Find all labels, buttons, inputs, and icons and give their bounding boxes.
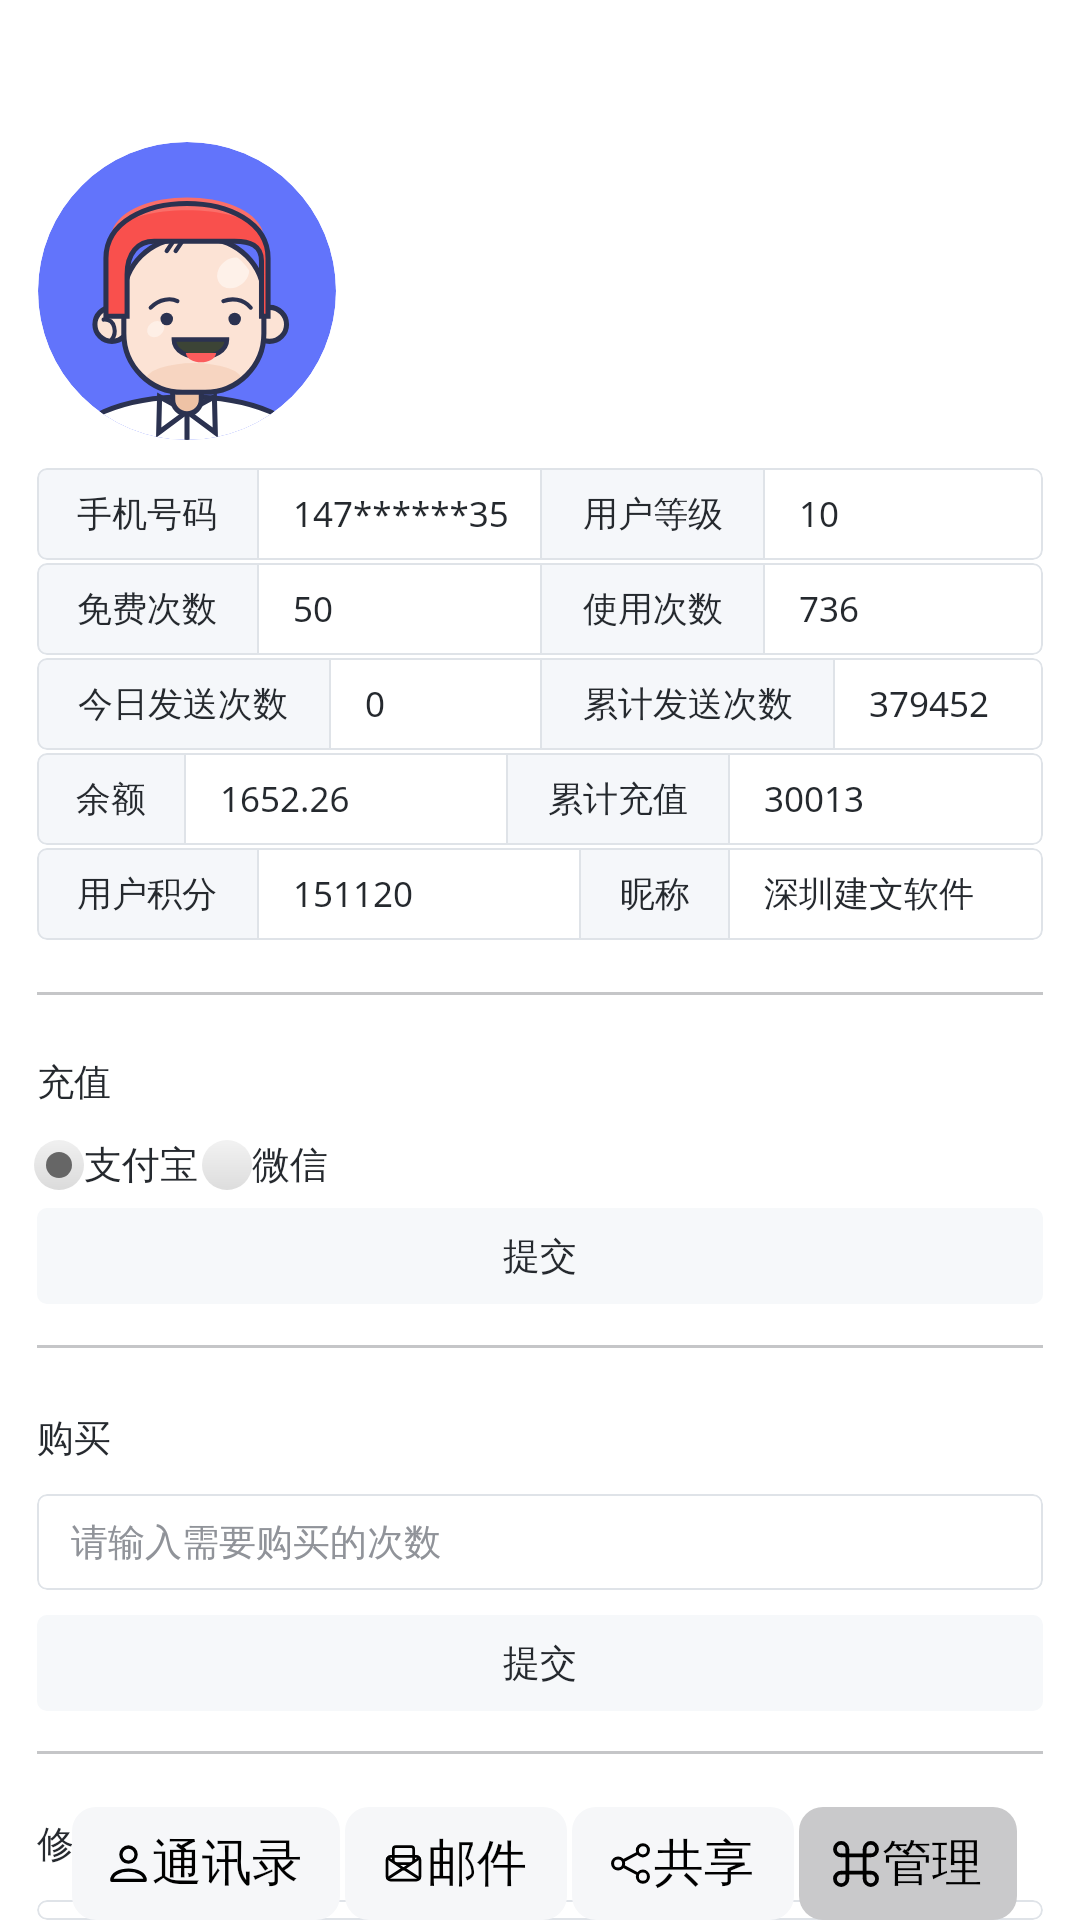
- staticText: 0: [365, 680, 386, 728]
- staticText: 管理: [882, 1832, 982, 1895]
- staticText: 10: [799, 490, 840, 538]
- button[interactable]: 提交: [37, 1208, 1043, 1304]
- staticText: 累计发送次数: [583, 682, 793, 726]
- staticText: 余额: [76, 777, 146, 821]
- staticText: 151120: [293, 870, 414, 918]
- staticText: 邮件: [427, 1832, 527, 1895]
- button[interactable]: 提交: [37, 1615, 1043, 1711]
- staticText: 使用次数: [583, 587, 723, 631]
- staticText: 修改昵称: [37, 1821, 185, 1868]
- staticText: 提交: [503, 1640, 577, 1687]
- staticText: 共享: [654, 1832, 754, 1895]
- button[interactable]: 微信: [202, 1140, 328, 1190]
- staticText: 手机号码: [77, 492, 217, 536]
- staticText: 请输入需要购买的次数: [71, 1519, 441, 1566]
- staticText: 累计充值: [548, 777, 688, 821]
- staticText: 深圳建文软件: [764, 872, 974, 916]
- staticText: 379452: [869, 680, 990, 728]
- button[interactable]: 共享: [572, 1807, 794, 1920]
- button[interactable]: 请输入需要购买的次数: [37, 1494, 1043, 1590]
- staticText: 充值: [37, 1059, 111, 1106]
- staticText: 用户积分: [77, 872, 217, 916]
- staticText: 通讯录: [152, 1832, 302, 1895]
- staticText: 提交: [503, 1233, 577, 1280]
- button[interactable]: 通讯录: [72, 1807, 340, 1920]
- button[interactable]: 邮件: [345, 1807, 567, 1920]
- staticText: 736: [799, 585, 860, 633]
- staticText: 昵称: [620, 872, 690, 916]
- staticText: 免费次数: [77, 587, 217, 631]
- button[interactable]: [37, 1900, 1043, 1920]
- button[interactable]: 管理: [799, 1807, 1017, 1920]
- staticText: 1652.26: [220, 775, 350, 823]
- button[interactable]: User avatar: [38, 142, 336, 440]
- staticText: 购买: [37, 1415, 111, 1462]
- staticText: 147******35: [293, 490, 509, 538]
- staticText: 今日发送次数: [78, 682, 288, 726]
- staticText: 30013: [764, 775, 865, 823]
- staticText: 50: [293, 585, 334, 633]
- staticText: 支付宝: [84, 1141, 198, 1189]
- staticText: 微信: [252, 1141, 328, 1189]
- button[interactable]: 支付宝: [34, 1140, 198, 1190]
- staticText: 用户等级: [583, 492, 723, 536]
